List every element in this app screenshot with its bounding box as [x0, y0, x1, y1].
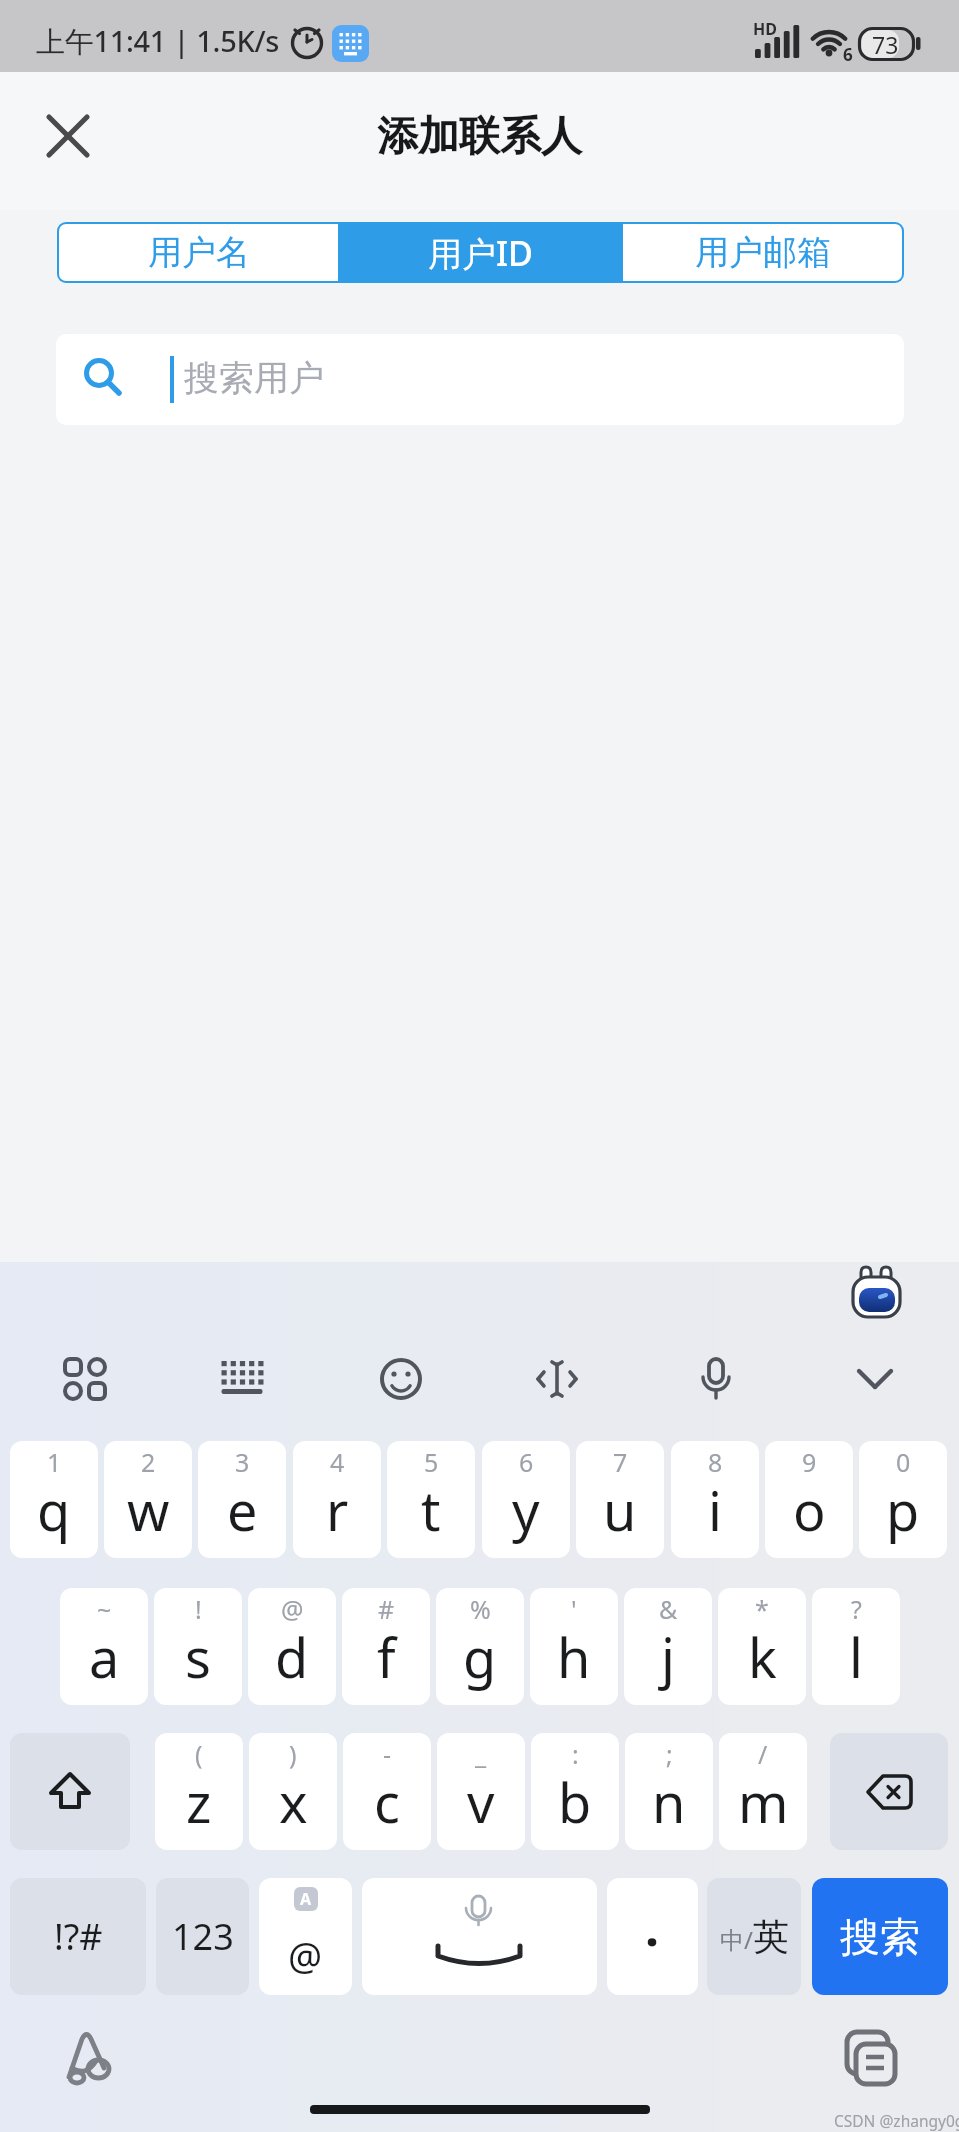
button[interactable]: 3: [198, 1441, 286, 1558]
button[interactable]: 4: [293, 1441, 381, 1558]
button[interactable]: !?#: [10, 1878, 146, 1995]
staticText: b: [558, 1765, 592, 1839]
button[interactable]: (: [155, 1733, 243, 1850]
button[interactable]: #: [342, 1588, 430, 1705]
staticText: 0: [896, 1445, 911, 1479]
button[interactable]: ~: [60, 1588, 148, 1705]
button[interactable]: [843, 2028, 899, 2088]
button[interactable]: ): [249, 1733, 337, 1850]
staticText: e: [227, 1473, 258, 1547]
button[interactable]: &: [624, 1588, 712, 1705]
button[interactable]: 7: [576, 1441, 664, 1558]
button[interactable]: [56, 334, 904, 425]
staticText: t: [421, 1473, 441, 1547]
staticText: u: [603, 1473, 637, 1547]
staticText: x: [279, 1765, 308, 1839]
staticText: n: [652, 1765, 686, 1839]
staticText: q: [37, 1473, 71, 1547]
button[interactable]: [362, 1878, 597, 1995]
button[interactable]: ': [530, 1588, 618, 1705]
staticText: 1: [47, 1445, 62, 1479]
button[interactable]: 1: [10, 1441, 98, 1558]
button[interactable]: :: [531, 1733, 619, 1850]
button[interactable]: [379, 1357, 423, 1401]
button[interactable]: _: [437, 1733, 525, 1850]
staticText: f: [377, 1620, 396, 1694]
staticText: 6: [843, 43, 853, 66]
button[interactable]: !: [154, 1588, 242, 1705]
button[interactable]: 123: [156, 1878, 249, 1995]
staticText: &: [659, 1592, 678, 1626]
staticText: v: [467, 1765, 495, 1839]
staticText: 7: [613, 1445, 628, 1479]
staticText: j: [661, 1620, 675, 1694]
staticText: @: [281, 1592, 304, 1626]
staticText: #: [378, 1592, 395, 1626]
staticText: l: [849, 1620, 863, 1694]
button[interactable]: 用户邮箱: [623, 224, 902, 281]
button[interactable]: [694, 1356, 738, 1402]
staticText: 123: [172, 1912, 234, 1961]
staticText: 2: [141, 1445, 156, 1479]
button[interactable]: [46, 114, 90, 158]
staticText: 4: [330, 1445, 345, 1479]
button[interactable]: /: [719, 1733, 807, 1850]
staticText: 搜索用户: [184, 356, 324, 400]
staticText: A: [300, 1888, 312, 1910]
staticText: c: [374, 1765, 400, 1839]
button[interactable]: A: [259, 1878, 352, 1995]
staticText: %: [470, 1592, 491, 1626]
button[interactable]: 0: [859, 1441, 947, 1558]
button[interactable]: 2: [104, 1441, 192, 1558]
button[interactable]: 5: [387, 1441, 475, 1558]
staticText: -: [383, 1737, 392, 1771]
button[interactable]: [10, 1733, 130, 1850]
button[interactable]: ;: [625, 1733, 713, 1850]
button[interactable]: -: [343, 1733, 431, 1850]
button[interactable]: *: [718, 1588, 806, 1705]
staticText: !?#: [54, 1912, 103, 1961]
staticText: 8: [708, 1445, 723, 1479]
staticText: @: [288, 1929, 323, 1981]
staticText: :: [572, 1737, 579, 1771]
staticText: o: [793, 1473, 826, 1547]
staticText: 5: [424, 1445, 439, 1479]
staticText: s: [185, 1620, 211, 1694]
staticText: *: [755, 1592, 769, 1626]
button[interactable]: [830, 1733, 948, 1850]
button[interactable]: ?: [812, 1588, 900, 1705]
button[interactable]: .: [607, 1878, 698, 1995]
button[interactable]: 中/英: [707, 1878, 801, 1995]
staticText: a: [89, 1620, 120, 1694]
button[interactable]: 用户ID: [340, 224, 621, 281]
staticText: k: [748, 1620, 777, 1694]
button[interactable]: [63, 1357, 107, 1401]
button[interactable]: @: [248, 1588, 336, 1705]
staticText: w: [127, 1473, 170, 1547]
button[interactable]: 9: [765, 1441, 853, 1558]
button[interactable]: [62, 2028, 114, 2084]
staticText: HD: [753, 18, 777, 40]
staticText: /: [758, 1737, 768, 1771]
button[interactable]: [535, 1357, 579, 1401]
button[interactable]: 6: [482, 1441, 570, 1558]
staticText: 6: [519, 1445, 534, 1479]
button[interactable]: %: [436, 1588, 524, 1705]
staticText: ;: [666, 1737, 673, 1771]
staticText: 用户ID: [428, 230, 533, 276]
button[interactable]: 用户名: [59, 224, 338, 281]
staticText: 搜索: [840, 1912, 920, 1962]
staticText: CSDN @zhangy0g: [834, 2110, 959, 2131]
button[interactable]: [220, 1357, 264, 1401]
button[interactable]: [853, 1362, 897, 1396]
button[interactable]: 搜索: [812, 1878, 948, 1995]
staticText: ?: [851, 1592, 862, 1626]
staticText: 9: [802, 1445, 817, 1479]
button[interactable]: [850, 1264, 904, 1318]
staticText: 中/英: [720, 1914, 789, 1959]
staticText: z: [186, 1765, 212, 1839]
staticText: 3: [235, 1445, 250, 1479]
staticText: ': [571, 1592, 577, 1626]
staticText: 用户邮箱: [695, 231, 831, 274]
button[interactable]: 8: [671, 1441, 759, 1558]
